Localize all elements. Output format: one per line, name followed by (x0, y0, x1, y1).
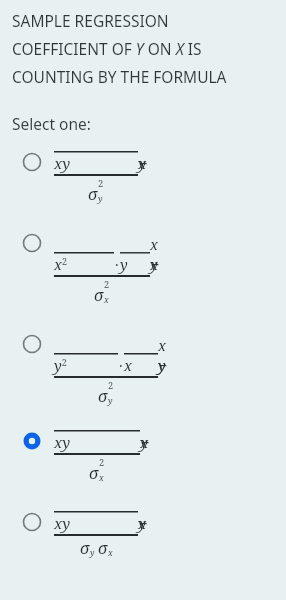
staticText: COUNTING BY THE FORMULA (12, 66, 227, 87)
staticText: x (104, 294, 109, 306)
staticText: Select one: (12, 113, 91, 134)
staticText: xy (54, 153, 71, 173)
staticText: y (108, 395, 113, 407)
button[interactable]: Option 3 (0, 330, 286, 409)
staticText: x (108, 547, 113, 559)
staticText: xy (54, 432, 71, 452)
staticText: SAMPLE REGRESSION (12, 10, 169, 31)
staticText: σ (80, 537, 90, 559)
staticText: y (90, 547, 95, 559)
staticText: xy (54, 513, 71, 533)
staticText: · (119, 355, 123, 375)
staticText: x2 (54, 254, 67, 274)
staticText: x (124, 355, 132, 375)
staticText: y (120, 254, 128, 274)
staticText: y (98, 193, 103, 205)
staticText: σ (88, 183, 98, 205)
staticText: 2 (99, 456, 105, 469)
button[interactable]: Option 2 (0, 229, 286, 308)
staticText: σ (98, 537, 108, 559)
button[interactable]: Option 1 (0, 148, 286, 207)
staticText: σ (98, 385, 108, 407)
staticText: · (115, 254, 119, 274)
staticText: 2 (98, 177, 104, 190)
staticText: x (99, 472, 104, 484)
staticText: y2 (54, 355, 67, 375)
button[interactable]: Option 4, selected (0, 427, 286, 486)
staticText: σ (89, 462, 99, 484)
staticText: σ (94, 284, 104, 306)
staticText: 2 (104, 278, 110, 291)
button[interactable]: Option 5 (0, 508, 286, 561)
staticText: 2 (108, 379, 114, 392)
staticText: COEFFICIENT OF Y ON X IS (12, 38, 202, 59)
